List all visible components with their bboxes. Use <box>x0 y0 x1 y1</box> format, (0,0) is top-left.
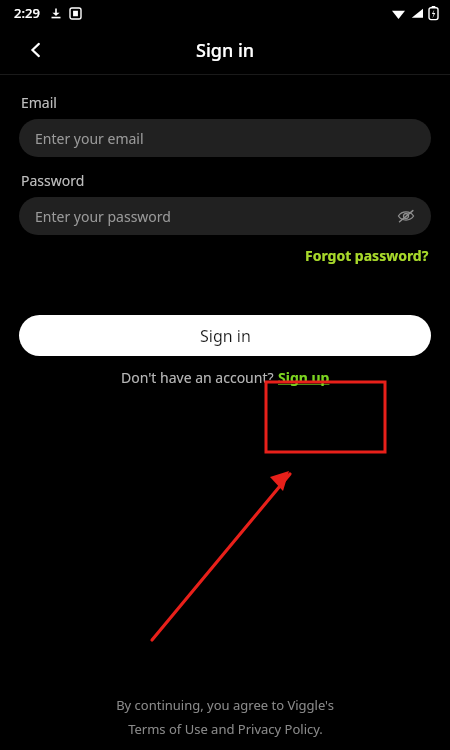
staticText: Sign up <box>278 368 330 387</box>
staticText: By continuing, you agree to Viggle's <box>116 696 334 714</box>
staticText: Enter your password <box>35 207 171 226</box>
button[interactable]: Sign in <box>19 315 431 356</box>
staticText: Don't have an account? <box>121 368 278 387</box>
button[interactable]: Show password <box>393 203 419 229</box>
staticText: Email <box>21 93 57 112</box>
staticText: 2:29 <box>14 4 40 22</box>
button[interactable]: Sign up <box>278 368 330 387</box>
button[interactable]: Enter your password <box>19 197 431 235</box>
button[interactable]: Terms of Use and Privacy Policy. <box>128 720 323 738</box>
staticText: Password <box>21 171 85 190</box>
staticText: Sign in <box>200 325 251 347</box>
button[interactable]: Enter your email <box>19 119 431 157</box>
staticText: Terms of Use and Privacy Policy. <box>128 720 323 738</box>
staticText: Forgot password? <box>305 246 429 265</box>
button[interactable]: Back <box>20 34 52 66</box>
staticText: Sign in <box>196 38 255 63</box>
button[interactable]: Forgot password? <box>303 244 431 267</box>
staticText: Enter your email <box>35 129 144 148</box>
